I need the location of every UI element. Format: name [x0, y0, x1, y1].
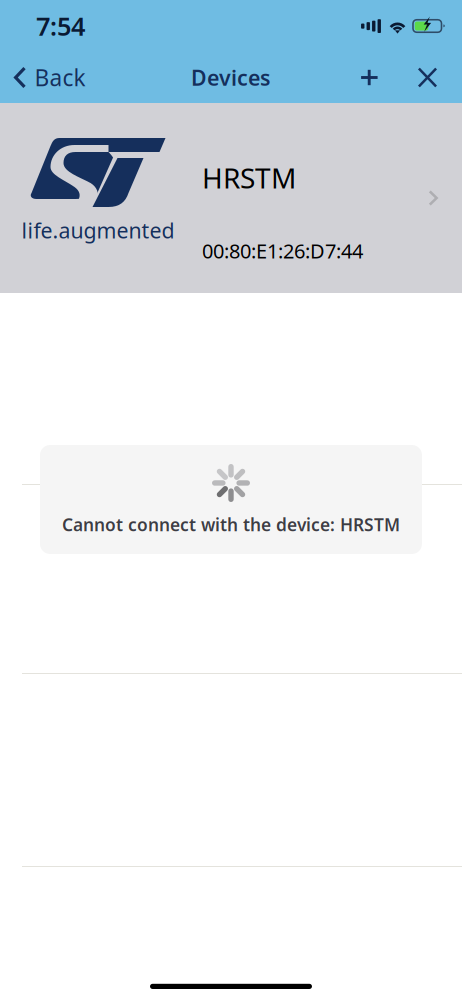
- staticText: 00:80:E1:26:D7:44: [202, 237, 363, 264]
- staticText: 7:54: [36, 9, 85, 43]
- staticText: Back: [34, 62, 85, 92]
- staticText: life.augmented: [21, 216, 174, 244]
- button[interactable]: Close: [397, 52, 462, 103]
- button[interactable]: Back: [0, 52, 95, 103]
- staticText: Devices: [191, 63, 271, 92]
- button[interactable]: life.augmented: [0, 103, 462, 293]
- staticText: HRSTM: [202, 159, 296, 196]
- button[interactable]: Add device: [348, 52, 397, 103]
- staticText: Cannot connect with the device: HRSTM: [62, 513, 400, 536]
